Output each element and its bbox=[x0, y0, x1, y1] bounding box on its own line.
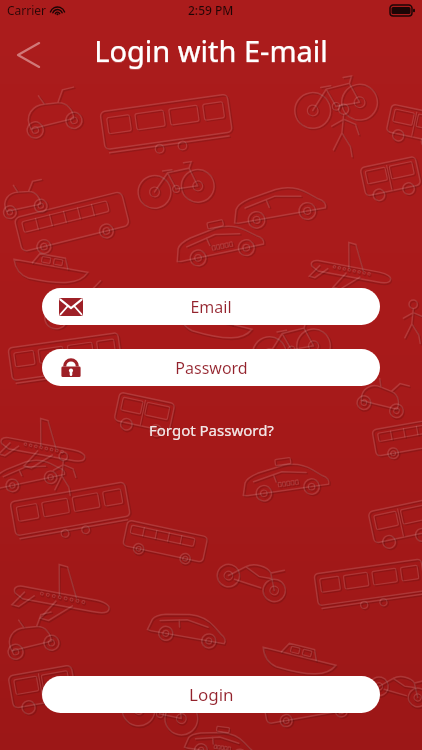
button[interactable]: Forgot Password? bbox=[143, 417, 280, 443]
button[interactable]: Back bbox=[6, 32, 52, 78]
staticText: Carrier bbox=[7, 2, 47, 18]
staticText: Login bbox=[189, 683, 234, 706]
staticText: Password bbox=[175, 357, 248, 379]
button[interactable]: Email bbox=[42, 288, 380, 325]
staticText: Email bbox=[190, 296, 232, 318]
button[interactable]: Password bbox=[42, 349, 380, 386]
staticText: 2:59 PM bbox=[188, 2, 234, 18]
staticText: Login with E-mail bbox=[0, 31, 422, 70]
staticText: Forgot Password? bbox=[149, 420, 274, 440]
staticText: Login with E-mail bbox=[0, 32, 422, 71]
button[interactable]: Login bbox=[42, 676, 380, 713]
